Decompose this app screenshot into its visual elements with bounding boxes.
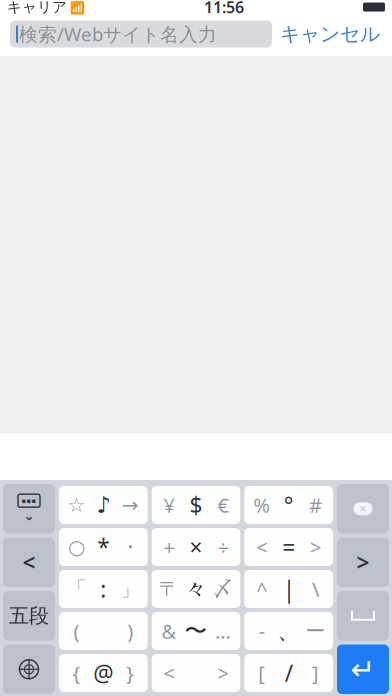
staticText: < <box>164 660 175 686</box>
button[interactable]: + <box>152 528 240 566</box>
staticText: < <box>256 534 267 560</box>
button[interactable]: ☆ <box>59 486 148 524</box>
staticText: ▪▪▪ <box>21 497 36 504</box>
staticText: + <box>164 534 175 560</box>
staticText: @ <box>93 658 113 688</box>
button[interactable]: キャンセル <box>272 17 388 51</box>
staticText: 〆 <box>213 577 233 601</box>
staticText: 々 <box>184 575 207 603</box>
button[interactable]: Move Left <box>3 537 55 587</box>
staticText: { <box>72 660 80 686</box>
staticText: > <box>356 547 369 577</box>
button[interactable]: Next Keyboard <box>3 644 55 694</box>
staticText: ) <box>127 618 133 644</box>
button[interactable]: Space <box>337 591 389 640</box>
button[interactable]: ¥ <box>152 486 240 524</box>
button[interactable]: % <box>244 486 333 524</box>
button[interactable]: ( <box>59 612 148 650</box>
staticText: ( <box>73 618 79 644</box>
staticText: 、 <box>277 617 300 645</box>
staticText: & <box>162 618 177 644</box>
button[interactable]: ○ <box>59 528 148 566</box>
staticText: > <box>310 534 321 560</box>
button[interactable]: [ <box>244 654 333 692</box>
staticText: \ <box>312 576 319 602</box>
staticText: ⌄ <box>23 508 34 523</box>
staticText: # <box>309 492 322 518</box>
staticText: ☆ <box>67 494 85 516</box>
staticText: ♪ <box>96 492 110 518</box>
button[interactable]: 〒 <box>152 570 240 608</box>
staticText: ] <box>312 660 319 686</box>
staticText: ° <box>284 490 294 520</box>
staticText: 📶 <box>67 0 85 15</box>
staticText: ○ <box>68 536 85 558</box>
staticText: 検索/Webサイト名入力 <box>19 22 217 46</box>
staticText: 〜 <box>184 617 207 645</box>
button[interactable]: ^ <box>244 570 333 608</box>
button[interactable]: 検索/Webサイト名入力 <box>10 20 272 47</box>
staticText: ✕ <box>359 503 367 514</box>
button[interactable]: - <box>244 612 333 650</box>
staticText: ・ <box>120 535 140 559</box>
staticText: → <box>122 494 139 516</box>
button[interactable]: < <box>244 528 333 566</box>
staticText: / <box>285 658 293 688</box>
staticText: } <box>126 660 134 686</box>
button[interactable]: 「 <box>59 570 148 608</box>
staticText: 11:56 <box>204 0 244 18</box>
staticText: ÷ <box>217 534 228 560</box>
staticText: 「 <box>66 577 86 601</box>
button[interactable]: { <box>59 654 148 692</box>
staticText: ^ <box>256 576 267 602</box>
staticText: $ <box>189 490 202 520</box>
staticText: - <box>259 618 265 644</box>
staticText: % <box>253 492 270 518</box>
button[interactable]: & <box>152 612 240 650</box>
staticText: [ <box>258 660 265 686</box>
staticText: ↵ <box>350 653 375 686</box>
button[interactable]: Five Row Input <box>3 591 55 640</box>
staticText: € <box>217 492 228 518</box>
staticText: キャンセル <box>280 22 380 46</box>
staticText: : <box>100 574 106 604</box>
button[interactable]: < <box>152 654 240 692</box>
button[interactable]: Delete <box>337 484 389 533</box>
staticText: * <box>97 532 109 562</box>
staticText: 」 <box>120 577 140 601</box>
staticText: … <box>215 618 231 644</box>
staticText: | <box>283 574 295 604</box>
staticText: ¥ <box>164 492 175 518</box>
staticText: キャリア <box>7 0 67 16</box>
staticText: ー <box>306 619 326 643</box>
staticText: 五段 <box>9 603 49 628</box>
staticText: × <box>189 532 202 562</box>
staticText: > <box>217 660 228 686</box>
button[interactable]: Hide Keyboard <box>3 484 55 533</box>
staticText: < <box>22 547 35 577</box>
button[interactable]: Move Right <box>337 537 389 587</box>
button[interactable]: Return <box>337 644 389 694</box>
staticText: 〒 <box>159 577 179 601</box>
staticText: = <box>282 532 295 562</box>
